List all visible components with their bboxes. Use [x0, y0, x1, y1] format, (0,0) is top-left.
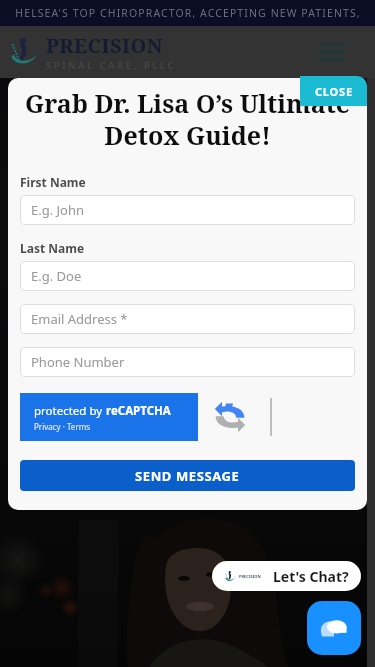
- staticText: Last Name: [20, 240, 85, 256]
- button[interactable]: Email Address *: [20, 304, 355, 334]
- button[interactable]: protected by: [20, 393, 198, 441]
- button[interactable]: SEND MESSAGE: [20, 460, 355, 491]
- staticText: E.g. Doe: [31, 267, 82, 285]
- button[interactable]: CLOSE: [300, 76, 367, 106]
- staticText: SEND MESSAGE: [135, 467, 240, 485]
- button[interactable]: Phone Number: [20, 347, 355, 377]
- button[interactable]: E.g. Doe: [20, 261, 355, 291]
- staticText: HELSEA'S TOP CHIROPRACTOR, ACCEPTING NEW…: [15, 6, 361, 20]
- staticText: CLOSE: [315, 84, 353, 99]
- staticText: PRECISION: [46, 32, 164, 59]
- staticText: First Name: [20, 174, 86, 190]
- staticText: protected by: [34, 403, 106, 419]
- staticText: Grab Dr. Lisa O’s Ultimate Detox Guide!: [20, 86, 355, 152]
- staticText: Phone Number: [31, 353, 125, 371]
- staticText: Let's Chat?: [273, 567, 349, 586]
- staticText: SPINAL CARE, PLLC: [46, 59, 177, 72]
- button[interactable]: PRECISION: [212, 561, 361, 591]
- button[interactable]: Open chat: [307, 601, 361, 655]
- button[interactable]: PRECISION: [8, 32, 177, 72]
- button[interactable]: E.g. John: [20, 195, 355, 225]
- staticText: Privacy · Terms: [34, 421, 90, 432]
- button[interactable]: Open menu: [315, 35, 349, 69]
- staticText: PRECISION: [239, 574, 261, 579]
- staticText: E.g. John: [31, 201, 85, 219]
- staticText: Email Address *: [31, 310, 128, 328]
- staticText: reCAPTCHA: [106, 403, 171, 419]
